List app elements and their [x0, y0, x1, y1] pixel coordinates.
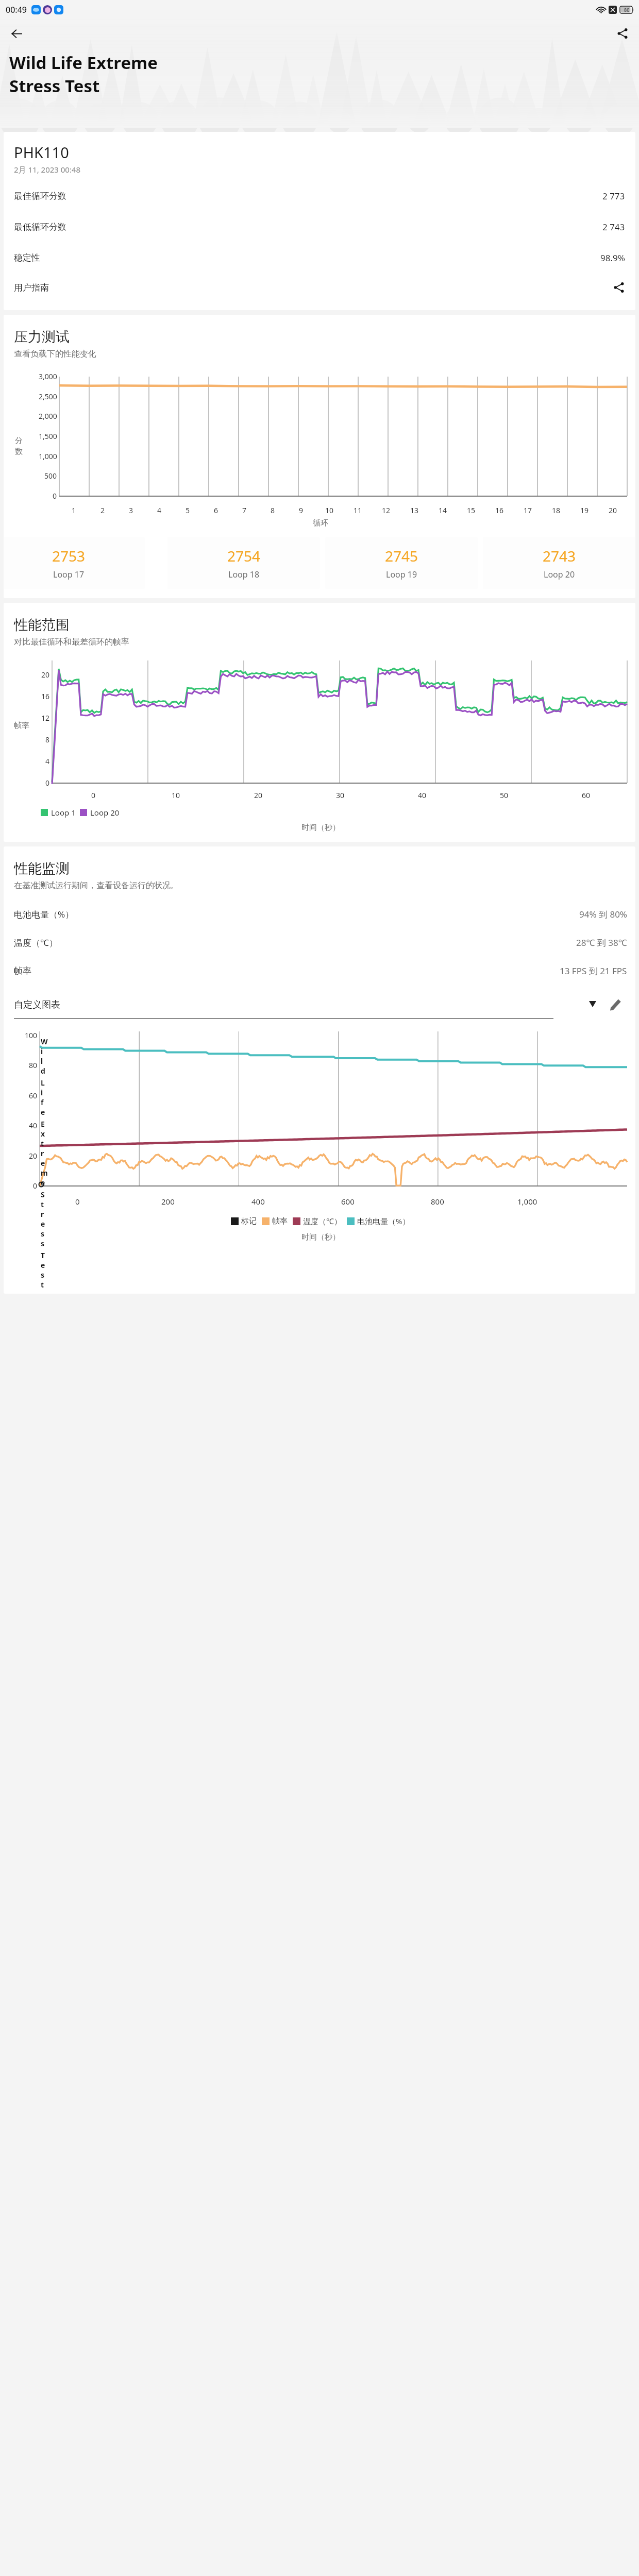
button[interactable]: Edit	[603, 993, 627, 1016]
staticText: s	[41, 1239, 45, 1248]
staticText: 对比最佳循环和最差循环的帧率	[14, 637, 129, 647]
staticText: 0	[75, 1196, 80, 1207]
button[interactable]: 2745	[325, 537, 478, 589]
staticText: PHK110	[14, 142, 69, 162]
staticText: 用户指南	[14, 282, 49, 293]
staticText: 电池电量（%）	[14, 908, 74, 920]
staticText: 800	[431, 1196, 444, 1207]
staticText: 14	[439, 505, 447, 515]
staticText: 最低循环分数	[14, 222, 66, 232]
staticText: 60	[29, 1091, 38, 1100]
staticText: 电池电量（%）	[357, 1216, 410, 1226]
staticText: 帧率	[14, 721, 29, 731]
staticText: 12	[41, 713, 50, 723]
staticText: m	[41, 1168, 48, 1178]
staticText: 16	[41, 691, 50, 701]
staticText: l	[41, 1056, 43, 1066]
button[interactable]: Share	[611, 22, 634, 45]
staticText: 2,000	[39, 411, 57, 421]
staticText: Loop 20	[544, 569, 575, 580]
staticText: 查看负载下的性能变化	[14, 349, 96, 359]
staticText: Wild Life Extreme	[9, 51, 158, 74]
staticText: 2,500	[39, 392, 57, 401]
staticText: 2754	[227, 546, 261, 566]
staticText: 20	[254, 790, 263, 800]
staticText: e	[41, 1219, 45, 1229]
staticText: 400	[251, 1196, 265, 1207]
staticText: 20	[609, 505, 617, 515]
staticText: 1,000	[39, 451, 57, 461]
staticText: 2 773	[602, 190, 625, 202]
staticText: 9	[299, 505, 304, 515]
button[interactable]: Back	[5, 22, 28, 45]
staticText: s	[41, 1229, 45, 1239]
button[interactable]: 2754	[167, 537, 320, 589]
staticText: 性能范围	[14, 616, 70, 634]
staticText: Loop 19	[386, 569, 417, 580]
staticText: 2月 11, 2023 00:48	[14, 164, 81, 175]
staticText: 分数	[15, 436, 26, 456]
staticText: 7	[242, 505, 247, 515]
staticText: 19	[580, 505, 589, 515]
staticText: 最佳循环分数	[14, 191, 66, 201]
staticText: 13	[410, 505, 419, 515]
staticText: r	[41, 1148, 44, 1158]
staticText: 时间（秒）	[301, 823, 340, 833]
staticText: 0	[91, 790, 96, 800]
staticText: 自定义图表	[14, 999, 60, 1011]
staticText: 0	[53, 491, 57, 501]
staticText: 2745	[385, 546, 418, 566]
staticText: x	[41, 1129, 45, 1139]
staticText: 18	[552, 505, 561, 515]
staticText: 温度（℃）	[14, 937, 58, 948]
staticText: i	[41, 1046, 43, 1056]
staticText: e	[41, 1260, 45, 1270]
staticText: 时间（秒）	[301, 1232, 340, 1242]
staticText: W	[41, 1037, 48, 1046]
staticText: t	[41, 1280, 44, 1290]
staticText: e	[41, 1158, 45, 1168]
staticText: 28℃ 到 38℃	[576, 937, 627, 948]
staticText: 80	[624, 7, 630, 13]
staticText: 帧率	[272, 1216, 288, 1226]
staticText: 50	[500, 790, 509, 800]
staticText: 16	[495, 505, 504, 515]
staticText: 15	[467, 505, 476, 515]
staticText: 200	[161, 1196, 175, 1207]
staticText: 500	[44, 471, 57, 481]
staticText: 1,000	[517, 1196, 537, 1207]
staticText: 标记	[241, 1216, 257, 1226]
staticText: E	[41, 1119, 45, 1129]
staticText: t	[41, 1139, 44, 1148]
staticText: 30	[336, 790, 345, 800]
staticText: 在基准测试运行期间，查看设备运行的状况。	[14, 880, 179, 891]
staticText: 8	[271, 505, 275, 515]
staticText: 40	[29, 1121, 38, 1130]
staticText: 60	[582, 790, 591, 800]
button[interactable]: 自定义图表	[14, 991, 603, 1018]
button[interactable]: 2743	[483, 537, 635, 589]
staticText: Loop 1	[51, 807, 76, 818]
staticText: 12	[382, 505, 391, 515]
staticText: 4	[45, 756, 50, 766]
staticText: 2743	[543, 546, 576, 566]
staticText: 性能监测	[14, 860, 70, 877]
button[interactable]: 2753	[4, 537, 145, 589]
staticText: Loop 20	[90, 807, 120, 818]
staticText: 2 743	[602, 221, 625, 233]
staticText: r	[41, 1209, 44, 1219]
staticText: 11	[354, 505, 362, 515]
staticText: 94% 到 80%	[579, 908, 627, 920]
staticText: 帧率	[14, 965, 31, 976]
staticText: 稳定性	[14, 252, 40, 263]
staticText: d	[41, 1066, 45, 1076]
staticText: 1,500	[39, 431, 57, 441]
staticText: 8	[45, 735, 50, 744]
staticText: 600	[341, 1196, 355, 1207]
staticText: Stress Test	[9, 74, 100, 97]
staticText: Loop 18	[228, 569, 260, 580]
staticText: s	[41, 1270, 45, 1280]
button[interactable]: 用户指南	[14, 274, 625, 301]
staticText: 20	[41, 670, 50, 680]
staticText: 温度（℃）	[303, 1216, 342, 1226]
